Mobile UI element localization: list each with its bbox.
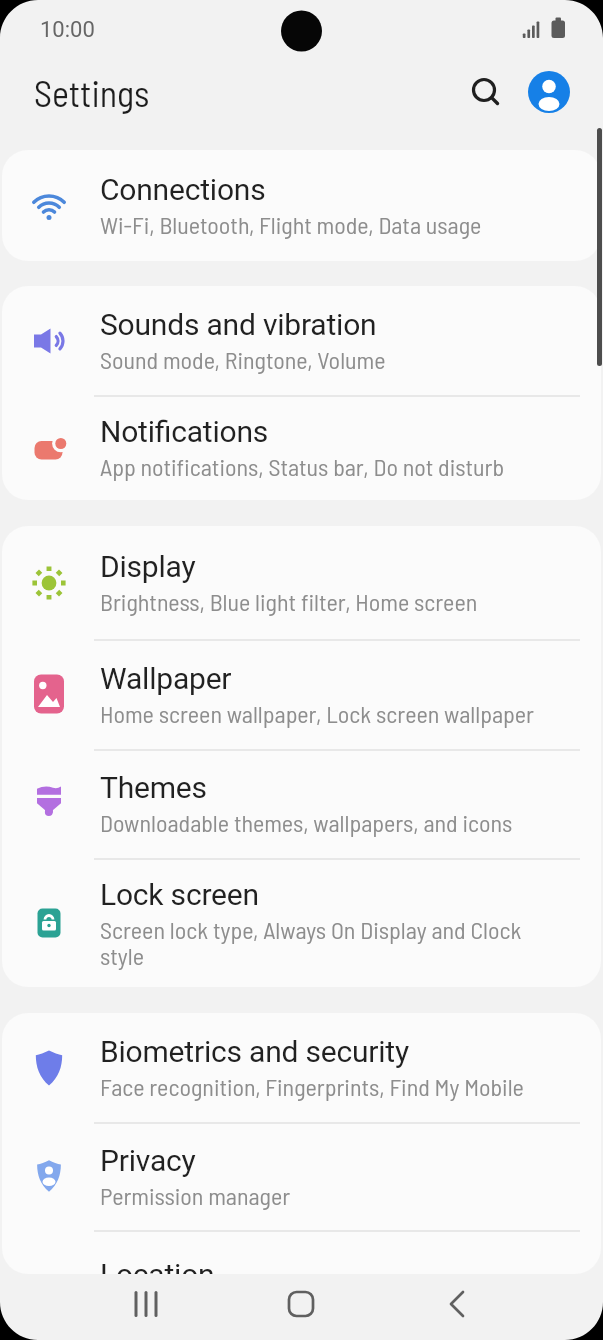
staticText: Brightness, Blue light filter, Home scre… (100, 587, 478, 616)
staticText: Wi-Fi, Bluetooth, Flight mode, Data usag… (100, 210, 482, 239)
staticText: Themes (100, 770, 207, 805)
staticText: Privacy (100, 1143, 196, 1178)
staticText: Display (100, 549, 196, 584)
button[interactable]: Biometrics and security (2, 1013, 601, 1122)
button[interactable] (116, 1274, 176, 1338)
staticText: Screen lock type, Always On Display and … (100, 915, 522, 969)
button[interactable]: Notifications (2, 395, 601, 500)
button[interactable]: Wallpaper (2, 639, 601, 749)
staticText: Downloadable themes, wallpapers, and ico… (100, 808, 513, 837)
staticText: Biometrics and security (100, 1034, 409, 1069)
button[interactable]: Themes (2, 749, 601, 858)
button[interactable] (468, 74, 505, 111)
staticText: Sounds and vibration (100, 307, 377, 342)
button[interactable]: Connections (2, 150, 601, 261)
button[interactable] (427, 1274, 487, 1338)
button[interactable]: Location (2, 1230, 601, 1274)
staticText: Notifications (100, 414, 269, 449)
button[interactable]: Display (2, 526, 601, 639)
staticText: 10:00 (40, 17, 95, 43)
button[interactable]: Lock screen (2, 858, 601, 987)
staticText: Location (100, 1257, 215, 1274)
staticText: Settings (34, 71, 150, 114)
staticText: Home screen wallpaper, Lock screen wallp… (100, 699, 534, 728)
button[interactable]: Sounds and vibration (2, 286, 601, 395)
button[interactable] (271, 1274, 331, 1338)
staticText: Connections (100, 172, 266, 207)
staticText: Permission manager (100, 1181, 291, 1210)
staticText: Lock screen (100, 877, 259, 912)
staticText: Face recognition, Fingerprints, Find My … (100, 1072, 524, 1101)
staticText: App notifications, Status bar, Do not di… (100, 452, 505, 481)
staticText: Sound mode, Ringtone, Volume (100, 345, 386, 374)
button[interactable]: Privacy (2, 1122, 601, 1230)
button[interactable] (528, 71, 570, 113)
staticText: Wallpaper (100, 661, 232, 696)
